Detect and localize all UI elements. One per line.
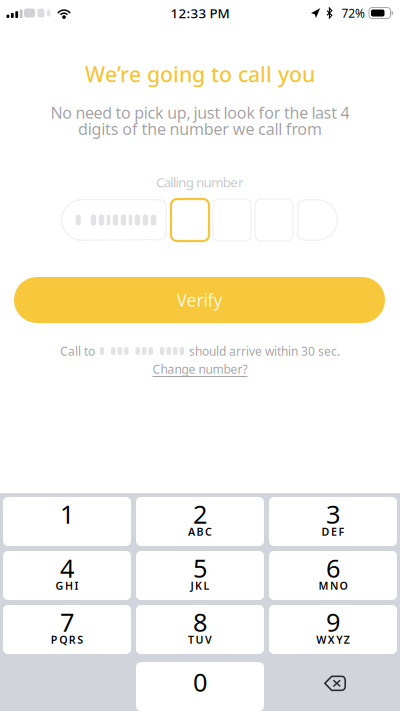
staticText: 6 — [326, 551, 340, 585]
staticText: Verify — [176, 288, 222, 311]
staticText: MNO — [318, 578, 347, 593]
staticText: No need to pick up, just look for the la… — [51, 102, 349, 123]
button[interactable]: 1 — [3, 497, 131, 546]
button[interactable]: 7 — [3, 605, 131, 654]
staticText: TUV — [188, 632, 212, 647]
button[interactable]: 9 — [269, 605, 397, 654]
staticText: 0 — [193, 665, 207, 699]
staticText: WXYZ — [316, 632, 350, 647]
button[interactable]: Verify — [14, 277, 385, 323]
staticText: 5 — [193, 551, 207, 585]
staticText: 3 — [326, 497, 340, 531]
staticText: 4 — [60, 551, 74, 585]
staticText: GHI — [55, 578, 78, 593]
staticText: 12:33 PM — [170, 4, 229, 22]
button[interactable]: 5 — [136, 551, 264, 600]
staticText: 9 — [326, 605, 340, 639]
staticText: Calling number — [156, 173, 244, 191]
staticText: 2 — [193, 497, 207, 531]
button[interactable]: Change number? — [152, 361, 247, 377]
staticText: 7 — [60, 605, 74, 639]
button[interactable]: 0 — [136, 662, 264, 711]
staticText: Call to — [60, 343, 95, 359]
button[interactable]: 4 — [3, 551, 131, 600]
button[interactable]: 6 — [269, 551, 397, 600]
staticText: should arrive within 30 sec. — [189, 343, 340, 359]
staticText: PQRS — [51, 632, 83, 647]
staticText: digits of the number we call from — [78, 118, 322, 139]
button[interactable]: 2 — [136, 497, 264, 546]
staticText: Change number? — [152, 361, 247, 377]
button[interactable]: Delete — [269, 662, 397, 711]
button[interactable]: 3 — [269, 497, 397, 546]
staticText: 72% — [342, 5, 365, 21]
staticText: We’re going to call you — [85, 60, 315, 88]
staticText: 1 — [60, 497, 74, 531]
staticText: 8 — [193, 605, 207, 639]
staticText: DEF — [321, 524, 344, 539]
staticText: ABC — [188, 524, 212, 539]
staticText: JKL — [190, 578, 209, 593]
button[interactable]: 8 — [136, 605, 264, 654]
